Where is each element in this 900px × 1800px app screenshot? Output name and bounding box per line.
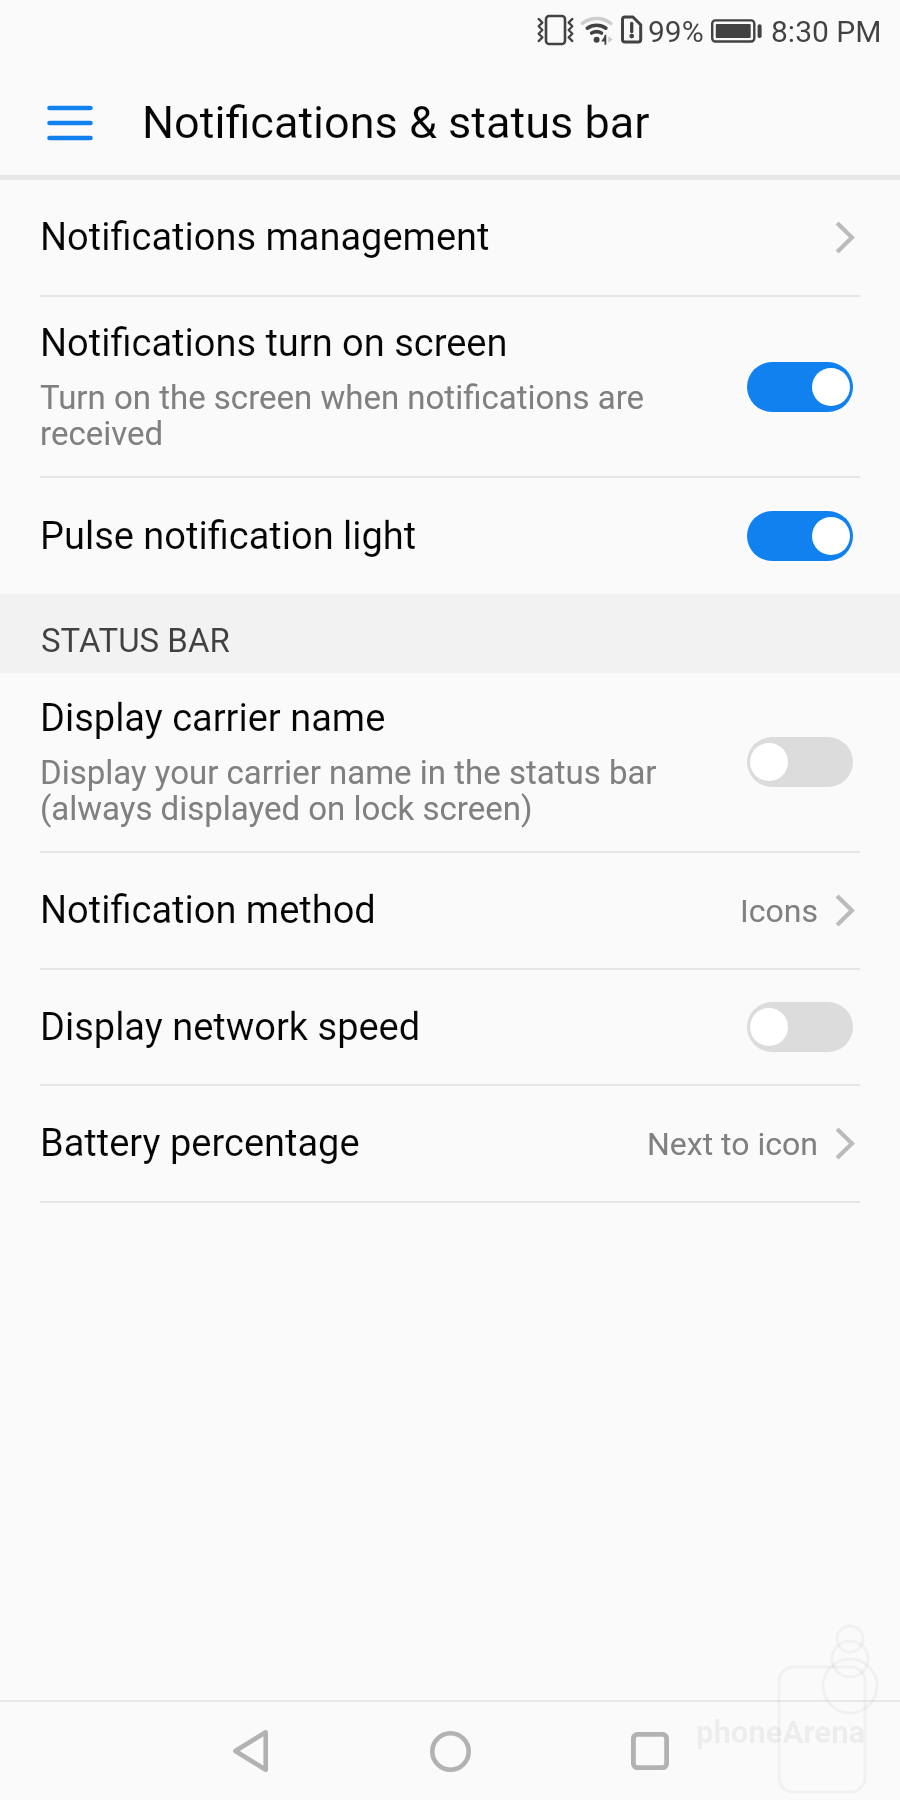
button[interactable]: Back	[150, 1702, 350, 1800]
button[interactable]: Home	[350, 1702, 550, 1800]
staticText: 8:30 PM	[771, 14, 882, 49]
button[interactable]: Notifications turn on screen	[0, 297, 900, 476]
staticText: Notifications management	[40, 215, 490, 260]
staticText: Next to icon	[647, 1125, 818, 1163]
button[interactable]: Notification method	[0, 853, 900, 968]
button[interactable]: Menu	[0, 70, 139, 175]
button[interactable]: Pulse notification light	[0, 478, 900, 594]
button[interactable]: Switch off	[747, 737, 853, 787]
staticText: Notifications & status bar	[142, 96, 650, 149]
staticText: Notifications turn on screen	[40, 321, 508, 366]
button[interactable]: Switch on	[747, 362, 853, 412]
button[interactable]: Display network speed	[0, 970, 900, 1084]
staticText: Pulse notification light	[40, 514, 417, 559]
staticText: STATUS BAR	[41, 621, 230, 660]
staticText: Display carrier name	[40, 696, 386, 741]
staticText: Display network speed	[40, 1005, 421, 1050]
staticText: Battery percentage	[40, 1121, 360, 1166]
staticText: 99%	[648, 14, 704, 49]
staticText: Turn on the screen when notifications ar…	[40, 378, 645, 453]
staticText: Display your carrier name in the status …	[40, 753, 657, 828]
button[interactable]: Switch off	[747, 1002, 853, 1052]
button[interactable]: Battery percentage	[0, 1086, 900, 1201]
staticText: phoneArena	[696, 1714, 866, 1750]
staticText: Icons	[740, 892, 818, 930]
button[interactable]: Switch on	[747, 511, 853, 561]
button[interactable]: Notifications management	[0, 180, 900, 295]
button[interactable]: Recents	[550, 1702, 750, 1800]
button[interactable]: Display carrier name	[0, 673, 900, 851]
staticText: Notification method	[40, 888, 376, 933]
